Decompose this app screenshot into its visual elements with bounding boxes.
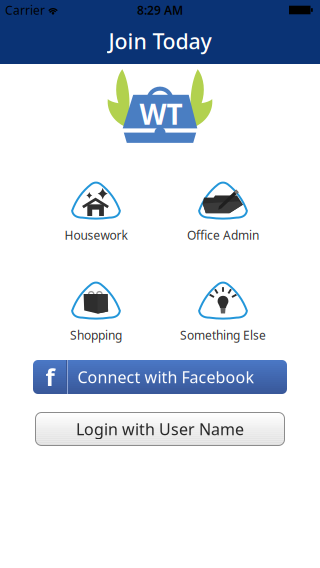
button[interactable]: Something Else [163,286,283,338]
staticText: Join Today [108,27,211,55]
staticText: WT [139,95,182,133]
staticText: Connect with Facebook [77,366,254,388]
staticText: Shopping [70,327,122,343]
staticText: Login with User Name [76,418,244,440]
staticText: f [45,361,54,393]
button[interactable]: f [33,360,287,394]
staticText: Office Admin [187,227,259,243]
button[interactable]: Housework [36,186,156,238]
button[interactable]: Shopping [36,286,156,338]
button[interactable]: Office Admin [163,186,283,238]
staticText: 8:29 AM [137,2,183,18]
button[interactable]: Login with User Name [35,412,284,445]
staticText: Housework [64,227,127,243]
staticText: Something Else [180,327,266,343]
staticText: Carrier [5,2,45,18]
